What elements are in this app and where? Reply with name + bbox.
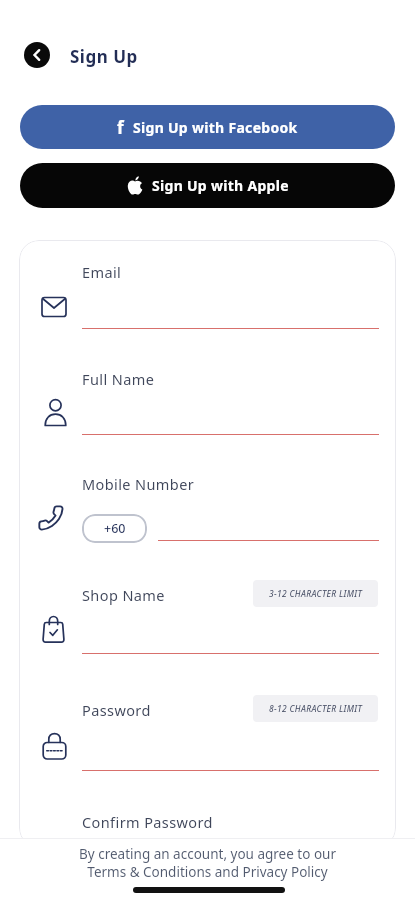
button[interactable]: f: [20, 105, 395, 149]
staticText: Confirm Password: [82, 812, 213, 832]
button[interactable]: +60: [82, 514, 147, 543]
staticText: By creating an account, you agree to our: [79, 845, 336, 863]
staticText: Password: [82, 700, 151, 720]
staticText: Shop Name: [82, 585, 165, 605]
button[interactable]: Sign Up with Apple: [20, 163, 395, 208]
staticText: +60: [104, 520, 126, 537]
staticText: Sign Up: [70, 45, 138, 68]
staticText: Sign Up with Apple: [152, 176, 289, 195]
staticText: f: [117, 116, 124, 139]
staticText: Full Name: [82, 369, 155, 389]
staticText: Mobile Number: [82, 474, 195, 494]
staticText: 8-12 CHARACTER LIMIT: [269, 703, 363, 715]
staticText: Email: [82, 262, 122, 282]
staticText: 3-12 CHARACTER LIMIT: [269, 588, 363, 600]
button[interactable]: [24, 42, 50, 68]
staticText: Sign Up with Facebook: [133, 118, 298, 137]
button[interactable]: Terms & Conditions and Privacy Policy: [87, 863, 328, 881]
